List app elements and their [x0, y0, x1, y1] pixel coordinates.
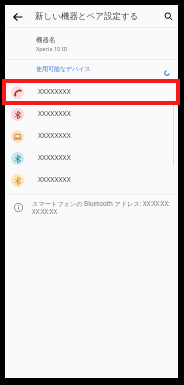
staticText: 使用可能なデバイス	[36, 65, 91, 73]
staticText: XXXXXXXX	[38, 131, 71, 141]
button[interactable]: XXXXXXXX	[5, 147, 178, 169]
button[interactable]: XXXXXXXX	[5, 169, 178, 191]
staticText: 新しい機器とペア設定する	[35, 11, 139, 22]
staticText: XXXXXXXX	[38, 153, 71, 163]
button[interactable]: 機器名	[5, 28, 178, 59]
staticText: Xperia 10 III	[36, 45, 68, 52]
button[interactable]: XXXXXXXX	[5, 103, 178, 125]
staticText: XXXXXXXX	[38, 109, 71, 119]
button[interactable]: 検索	[160, 8, 177, 25]
button[interactable]: XXXXXXXX	[5, 125, 178, 147]
staticText: スマートフォンの Bluetooth アドレス: XX:XX:XX: XX:XX…	[32, 199, 170, 216]
staticText: XXXXXXXX	[38, 87, 71, 97]
staticText: 機器名	[36, 36, 56, 44]
button[interactable]: 戻る	[9, 8, 26, 25]
staticText: XXXXXXXX	[38, 175, 71, 185]
button[interactable]: XXXXXXXX	[5, 81, 178, 103]
